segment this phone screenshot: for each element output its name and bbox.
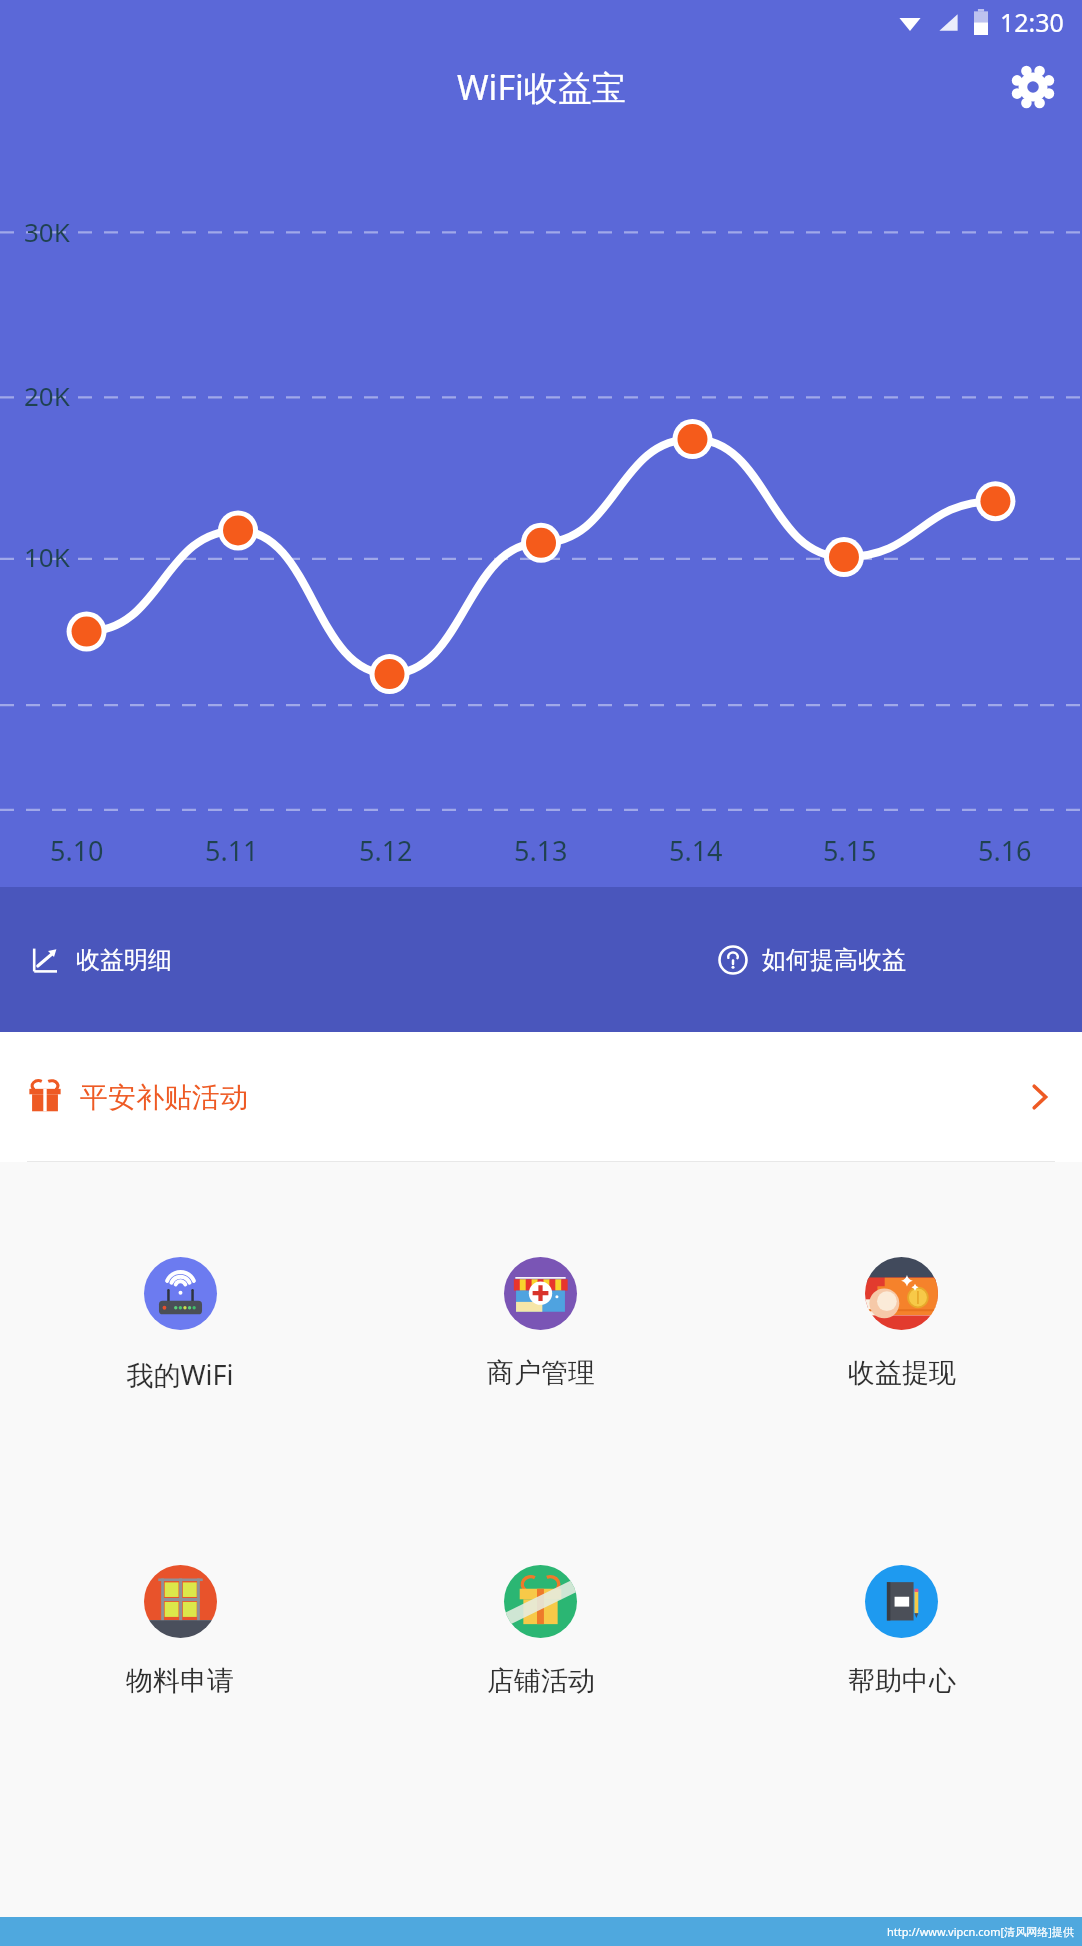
button[interactable]: 店铺活动: [360, 1565, 721, 1813]
staticText: 如何提高收益: [762, 945, 906, 975]
staticText: 5.15: [823, 832, 877, 869]
staticText: 5.13: [514, 832, 568, 869]
staticText: 5.14: [669, 832, 723, 869]
button[interactable]: 如何提高收益: [541, 887, 1082, 1032]
button[interactable]: 平安补贴活动: [0, 1032, 1082, 1162]
staticText: 30K: [24, 214, 70, 249]
staticText: 5.16: [978, 832, 1032, 869]
button[interactable]: 商户管理: [360, 1257, 721, 1505]
staticText: http://www.vipcn.com[清风网络]提供: [887, 1924, 1074, 1939]
staticText: 5.11: [205, 832, 259, 869]
staticText: 店铺活动: [487, 1664, 595, 1698]
staticText: 收益明细: [76, 945, 172, 975]
staticText: WiFi收益宝: [457, 64, 626, 110]
staticText: 帮助中心: [848, 1664, 956, 1698]
staticText: 商户管理: [487, 1356, 595, 1390]
staticText: 我的WiFi: [126, 1356, 234, 1393]
button[interactable]: Settings: [1010, 64, 1056, 110]
staticText: 收益提现: [848, 1356, 956, 1390]
staticText: 20K: [24, 378, 70, 413]
staticText: 平安补贴活动: [80, 1080, 248, 1115]
button[interactable]: 帮助中心: [721, 1565, 1082, 1813]
staticText: 物料申请: [126, 1664, 234, 1698]
button[interactable]: 收益明细: [0, 887, 541, 1032]
button[interactable]: 收益提现: [721, 1257, 1082, 1505]
staticText: 12:30: [1000, 5, 1064, 39]
button[interactable]: 我的WiFi: [0, 1257, 360, 1505]
button[interactable]: 物料申请: [0, 1565, 360, 1813]
staticText: 5.10: [50, 832, 104, 869]
staticText: 5.12: [359, 832, 413, 869]
staticText: 10K: [24, 539, 70, 574]
